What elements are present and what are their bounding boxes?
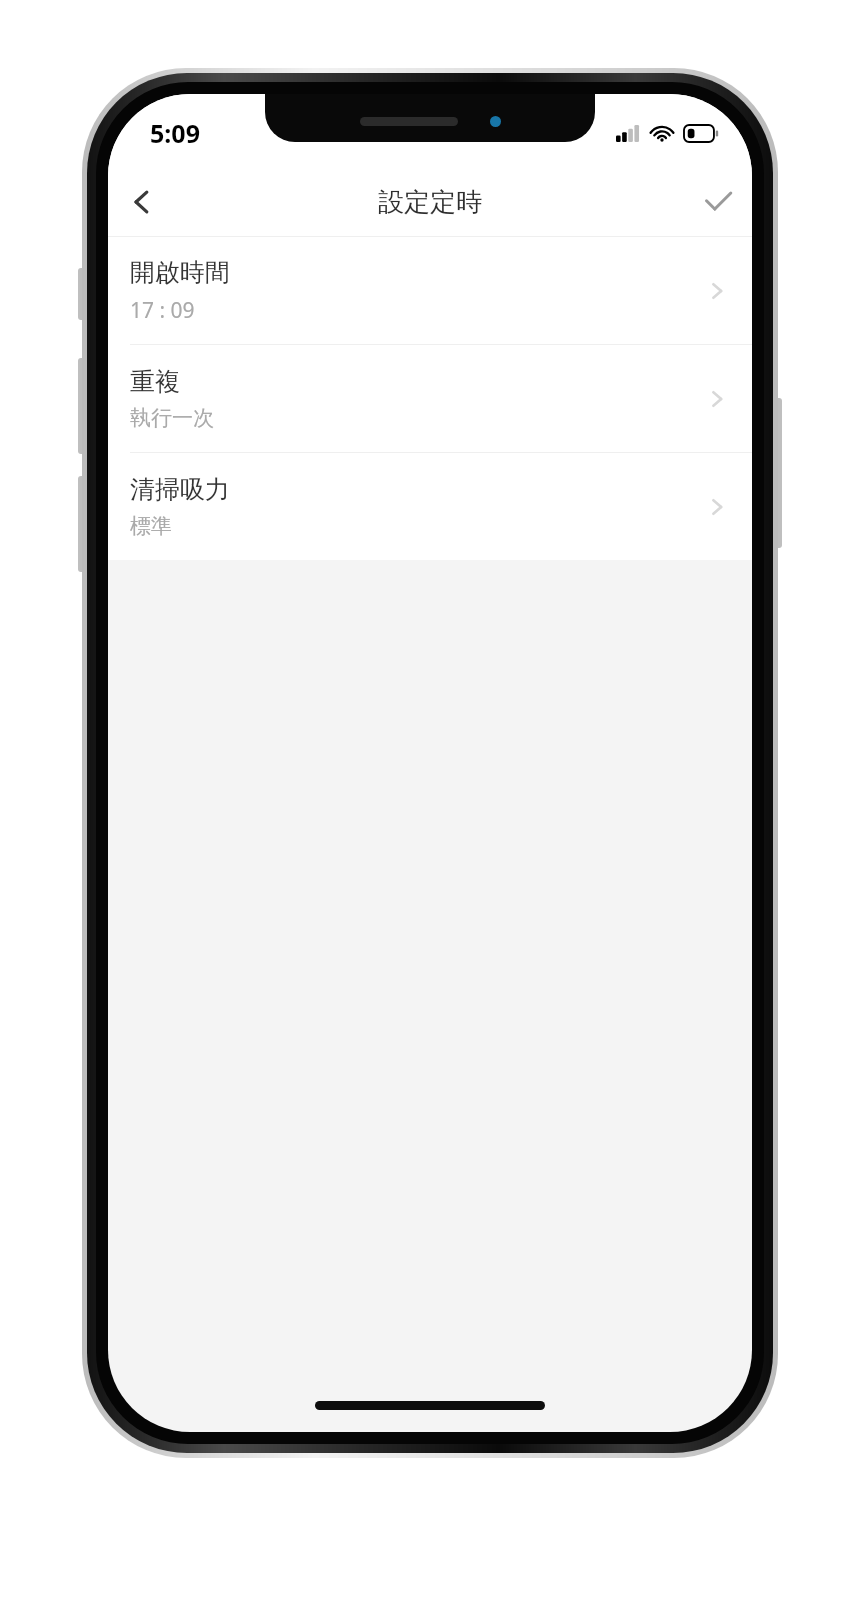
- staticText: 執行一次: [130, 405, 214, 431]
- button[interactable]: 清掃吸力: [108, 453, 752, 560]
- button[interactable]: Back: [108, 168, 176, 236]
- button[interactable]: 開啟時間: [108, 237, 752, 344]
- staticText: 清掃吸力: [130, 474, 230, 505]
- button[interactable]: Confirm: [684, 168, 752, 236]
- staticText: 設定定時: [378, 186, 482, 219]
- button[interactable]: 重複: [108, 345, 752, 452]
- staticText: 標準: [130, 513, 172, 539]
- staticText: 17 : 09: [130, 296, 195, 325]
- staticText: 重複: [130, 366, 180, 397]
- staticText: 開啟時間: [130, 257, 230, 288]
- staticText: 5:09: [150, 116, 200, 150]
